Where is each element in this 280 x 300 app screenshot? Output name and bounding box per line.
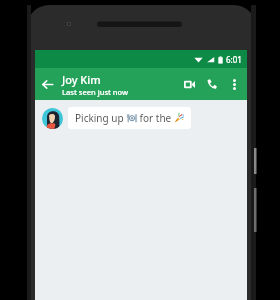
button[interactable]: Call [201,73,223,95]
button[interactable]: Joy Kim [62,72,178,97]
button[interactable]: More options [224,74,244,94]
staticText: 6:01 [226,54,242,65]
button[interactable]: Picking up [68,107,191,129]
staticText: for the [137,111,174,125]
staticText: Last seen just now [62,87,129,97]
button[interactable]: Joy Kim avatar [42,108,63,129]
staticText: Joy Kim [62,72,101,87]
button[interactable]: Video call [178,73,200,95]
staticText: Picking up [75,111,127,125]
button[interactable]: Back [35,72,59,96]
